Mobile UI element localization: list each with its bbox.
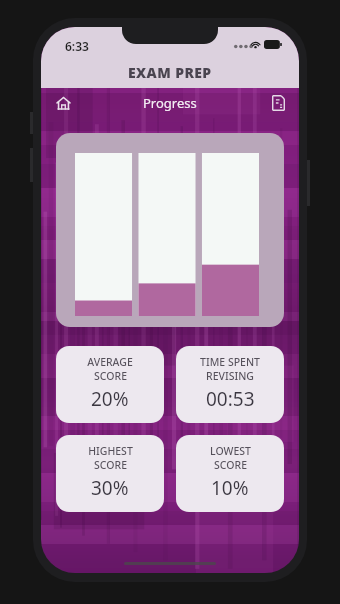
staticText: REVISING [206, 369, 254, 383]
button[interactable]: Report [265, 90, 291, 116]
staticText: SCORE [94, 369, 127, 383]
staticText: 6:33 [65, 38, 89, 54]
staticText: HIGHEST [88, 444, 133, 458]
button[interactable]: AVERAGE [56, 346, 164, 423]
staticText: EXAM PREP [128, 63, 212, 82]
button[interactable]: HIGHEST [56, 435, 164, 512]
button[interactable]: TIME SPENT [176, 346, 284, 423]
staticText: 30% [91, 475, 129, 501]
button[interactable]: Home [50, 90, 76, 116]
staticText: Progress [143, 94, 197, 112]
button[interactable]: LOWEST [176, 435, 284, 512]
staticText: 10% [211, 475, 249, 501]
staticText: TIME SPENT [200, 355, 260, 369]
staticText: SCORE [94, 458, 127, 472]
staticText: SCORE [214, 458, 247, 472]
staticText: 00:53 [206, 386, 255, 412]
staticText: AVERAGE [87, 355, 133, 369]
staticText: 20% [91, 386, 129, 412]
staticText: LOWEST [210, 444, 251, 458]
button[interactable] [56, 133, 284, 327]
